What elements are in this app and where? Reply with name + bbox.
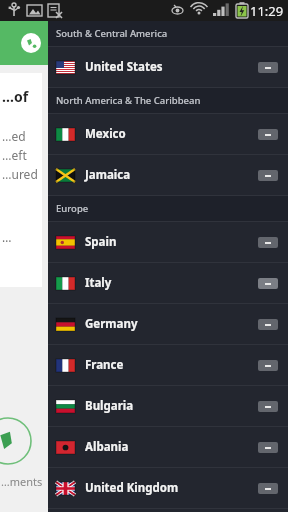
staticText: United States	[85, 59, 258, 75]
staticText: United Kingdom	[85, 480, 258, 496]
button[interactable]: Download Albania	[258, 442, 278, 453]
staticText: …of	[2, 87, 29, 106]
staticText: Albania	[85, 439, 258, 455]
button[interactable]: Download United Kingdom	[258, 483, 278, 494]
button[interactable]: Germany	[48, 304, 288, 344]
button[interactable]: Albania	[48, 427, 288, 467]
button[interactable]: United States	[48, 47, 288, 87]
staticText: Italy	[85, 275, 258, 291]
button[interactable]: Mexico	[48, 114, 288, 154]
button[interactable]: Download Spain	[258, 237, 278, 248]
staticText: …nglish	[2, 229, 42, 245]
button[interactable]: Jamaica	[48, 155, 288, 195]
staticText: …ured	[2, 166, 38, 182]
staticText: Bulgaria	[85, 398, 258, 414]
button[interactable]: France	[48, 345, 288, 385]
button[interactable]: Bulgaria	[48, 386, 288, 426]
staticText: Mexico	[85, 126, 258, 142]
button[interactable]: United Kingdom	[48, 468, 288, 508]
button[interactable]: Italy	[48, 263, 288, 303]
staticText: …ed	[2, 128, 26, 144]
staticText: France	[85, 357, 258, 373]
staticText: Jamaica	[85, 167, 258, 183]
button[interactable]: Download Jamaica	[258, 170, 278, 181]
button[interactable]: Download France	[258, 360, 278, 371]
button[interactable]: Download Germany	[258, 319, 278, 330]
staticText: …eft	[2, 147, 27, 163]
staticText: 11:29	[250, 2, 284, 20]
staticText: …ments	[1, 474, 43, 489]
staticText: North America & The Caribbean	[56, 94, 201, 107]
staticText: South & Central America	[56, 27, 168, 40]
staticText: Germany	[85, 316, 258, 332]
button[interactable]: Download Italy	[258, 278, 278, 289]
button[interactable]: Download United States	[258, 62, 278, 73]
staticText: Spain	[85, 234, 258, 250]
button[interactable]: Download Mexico	[258, 129, 278, 140]
button[interactable]: Download Bulgaria	[258, 401, 278, 412]
staticText: Europe	[56, 202, 89, 215]
button[interactable]: Spain	[48, 222, 288, 262]
